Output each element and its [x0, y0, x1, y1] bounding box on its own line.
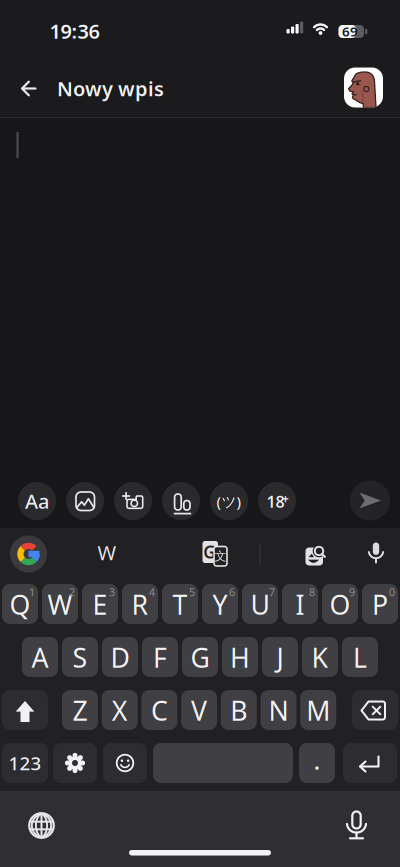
button[interactable]: I: [282, 584, 318, 624]
button[interactable]: Settings: [53, 743, 97, 783]
staticText: Aa: [25, 488, 49, 514]
staticText: 123: [8, 751, 41, 775]
button[interactable]: Voice typing: [361, 535, 391, 569]
staticText: O: [329, 587, 350, 622]
staticText: 9: [349, 585, 355, 599]
button[interactable]: Translate: [197, 536, 231, 570]
button[interactable]: A: [22, 637, 58, 677]
button[interactable]: S: [62, 637, 98, 677]
button[interactable]: Send: [350, 480, 390, 520]
button[interactable]: Take photo: [114, 482, 152, 520]
button[interactable]: P: [362, 584, 398, 624]
button[interactable]: Period: [299, 743, 335, 783]
button[interactable]: Dictation: [338, 804, 374, 844]
button[interactable]: G: [182, 637, 218, 677]
staticText: I: [295, 587, 304, 622]
staticText: 19:36: [49, 18, 99, 44]
staticText: W: [47, 587, 72, 622]
staticText: 0: [389, 585, 395, 599]
staticText: 3: [109, 585, 115, 599]
button[interactable]: T: [162, 584, 198, 624]
button[interactable]: W: [42, 584, 78, 624]
staticText: Z: [72, 693, 87, 728]
staticText: .: [314, 747, 320, 776]
staticText: M: [306, 693, 330, 728]
staticText: Y: [212, 587, 227, 622]
staticText: G: [203, 540, 216, 563]
staticText: B: [230, 693, 247, 728]
staticText: T: [172, 587, 187, 622]
staticText: +: [282, 490, 289, 506]
button[interactable]: V: [181, 690, 217, 730]
button[interactable]: Return: [343, 743, 397, 783]
staticText: W: [97, 539, 116, 566]
button[interactable]: Google search: [10, 535, 47, 572]
staticText: 1: [29, 585, 35, 599]
staticText: H: [230, 640, 250, 675]
button[interactable]: Delete: [352, 690, 398, 730]
staticText: 5: [189, 585, 195, 599]
button[interactable]: L: [342, 637, 378, 677]
staticText: 7: [269, 585, 275, 599]
button[interactable]: M: [300, 690, 336, 730]
button[interactable]: Z: [62, 690, 98, 730]
button[interactable]: X: [102, 690, 138, 730]
staticText: C: [151, 693, 168, 728]
staticText: D: [110, 640, 129, 675]
button[interactable]: E: [82, 584, 118, 624]
button[interactable]: W: [67, 532, 147, 572]
staticText: J: [276, 640, 283, 675]
button[interactable]: K: [302, 637, 338, 677]
button[interactable]: O: [322, 584, 358, 624]
staticText: U: [250, 587, 269, 622]
button[interactable]: N: [260, 690, 296, 730]
button[interactable]: Shift: [2, 690, 48, 730]
button[interactable]: Add image: [66, 482, 104, 520]
staticText: 18: [266, 491, 284, 512]
button[interactable]: F: [142, 637, 178, 677]
staticText: X: [112, 693, 128, 728]
staticText: 2: [69, 585, 75, 599]
button[interactable]: J: [262, 637, 298, 677]
button[interactable]: Switch keyboard: [23, 807, 59, 843]
staticText: F: [153, 640, 167, 675]
staticText: S: [72, 640, 87, 675]
staticText: L: [353, 640, 367, 675]
button[interactable]: B: [221, 690, 257, 730]
staticText: 8: [309, 585, 315, 599]
staticText: A: [31, 640, 48, 675]
staticText: K: [311, 640, 328, 675]
staticText: V: [191, 693, 207, 728]
button[interactable]: U: [242, 584, 278, 624]
button[interactable]: Q: [2, 584, 38, 624]
button[interactable]: Kaomoji: [210, 482, 248, 520]
button[interactable]: Y: [202, 584, 238, 624]
staticText: Nowy wpis: [57, 75, 164, 102]
staticText: 6: [229, 585, 235, 599]
staticText: R: [131, 587, 148, 622]
staticText: 4: [149, 585, 155, 599]
button[interactable]: Profile: [344, 67, 383, 107]
staticText: E: [92, 587, 107, 622]
button[interactable]: Text style: [18, 482, 56, 520]
staticText: P: [372, 587, 388, 622]
button[interactable]: Emoji: [103, 743, 147, 783]
staticText: N: [268, 693, 288, 728]
button[interactable]: H: [222, 637, 258, 677]
staticText: (ツ): [216, 492, 241, 511]
button[interactable]: C: [141, 690, 177, 730]
button[interactable]: Mark 18+: [258, 482, 296, 520]
button[interactable]: D: [102, 637, 138, 677]
button[interactable]: Image search: [297, 536, 331, 570]
button[interactable]: Numbers: [2, 743, 48, 783]
staticText: G: [190, 640, 209, 675]
staticText: Q: [9, 587, 30, 622]
button[interactable]: R: [122, 584, 158, 624]
button[interactable]: Add poll: [162, 482, 200, 520]
staticText: 69: [342, 22, 358, 40]
button[interactable]: Back: [12, 72, 44, 104]
staticText: 文: [214, 549, 226, 564]
